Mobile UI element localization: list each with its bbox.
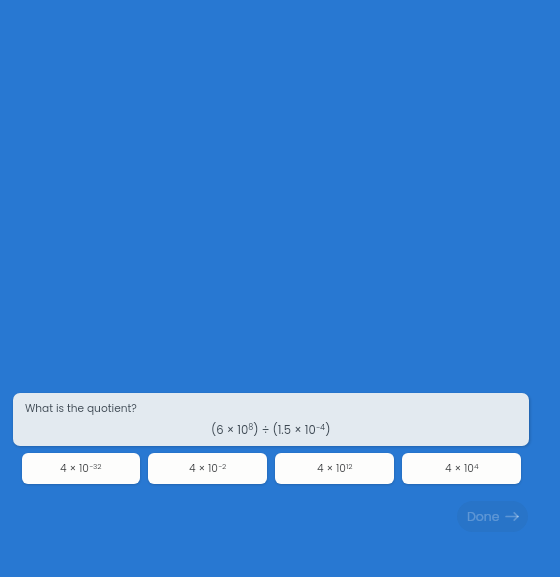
staticText: 4 × 10−32 xyxy=(60,461,102,476)
button[interactable]: 4 × 10−2 xyxy=(148,453,267,484)
staticText: Done xyxy=(467,508,500,525)
staticText: 4 × 104 xyxy=(445,461,479,476)
staticText: (6 × 108) ÷ (1.5 × 10−4) xyxy=(211,422,331,438)
button[interactable]: 4 × 104 xyxy=(402,453,521,484)
staticText: 4 × 1012 xyxy=(317,461,353,476)
button[interactable]: Done xyxy=(457,501,528,532)
other: Next xyxy=(505,511,519,522)
staticText: 4 × 10−2 xyxy=(189,461,227,476)
button[interactable]: 4 × 10−32 xyxy=(22,453,140,484)
button[interactable]: 4 × 1012 xyxy=(275,453,394,484)
staticText: What is the quotient? xyxy=(25,401,137,416)
